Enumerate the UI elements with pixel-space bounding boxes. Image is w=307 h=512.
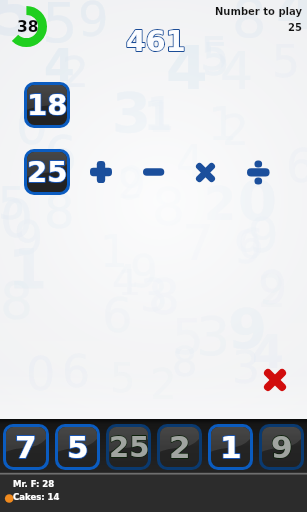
staticText: 25 <box>109 430 148 464</box>
staticText: 461 <box>126 25 186 58</box>
staticText: 7 <box>15 429 37 465</box>
button[interactable]: Timer <box>2 2 52 52</box>
staticText: 9 <box>271 429 293 465</box>
button[interactable]: 25 <box>24 149 70 195</box>
button[interactable]: Plus <box>90 161 112 183</box>
staticText: 25 <box>288 22 302 34</box>
staticText: 1 <box>220 429 242 465</box>
button[interactable]: Multiply <box>196 163 215 182</box>
button[interactable]: 2 <box>157 424 202 470</box>
button[interactable]: Clear <box>264 369 286 391</box>
button[interactable]: Divide <box>247 160 271 184</box>
staticText: 18 <box>27 88 67 122</box>
button[interactable]: 18 <box>24 82 70 128</box>
button[interactable]: 9 <box>259 424 304 470</box>
staticText: 5 <box>67 429 89 465</box>
button[interactable]: 1 <box>208 424 253 470</box>
staticText: 25 <box>27 155 67 189</box>
button[interactable]: 25 <box>106 424 151 470</box>
staticText: Number to play <box>215 6 302 18</box>
staticText: 9 <box>271 429 293 465</box>
staticText: 2 <box>169 429 191 465</box>
staticText: Cakes: 14 <box>13 492 60 502</box>
staticText: 1 <box>220 429 242 465</box>
staticText: 7 <box>15 429 37 465</box>
staticText: Mr. F: 28 <box>13 479 55 489</box>
button[interactable]: Minus <box>143 161 165 183</box>
staticText: 2 <box>169 429 191 465</box>
staticText: 25 <box>27 155 67 189</box>
staticText: 38 <box>17 18 39 36</box>
staticText: 5 <box>67 429 89 465</box>
staticText: 18 <box>27 88 67 122</box>
staticText: 25 <box>109 430 148 464</box>
button[interactable]: 7 <box>3 424 49 470</box>
button[interactable]: 5 <box>55 424 100 470</box>
staticText: 461 <box>126 25 186 58</box>
